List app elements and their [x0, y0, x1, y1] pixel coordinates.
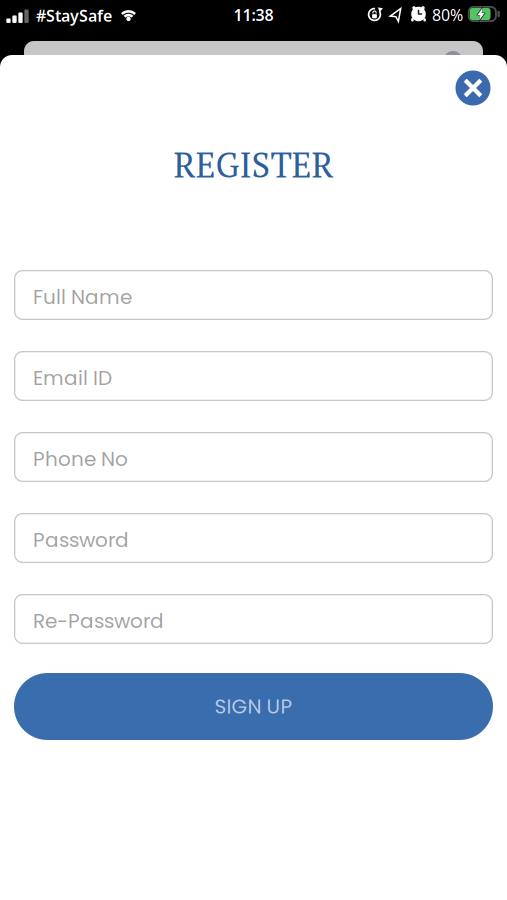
staticText: SIGN UP: [214, 692, 292, 720]
button[interactable]: Re-Password: [14, 594, 493, 644]
staticText: 80%: [432, 4, 463, 25]
staticText: Re-Password: [33, 607, 164, 635]
staticText: Phone No: [33, 445, 128, 473]
button[interactable]: Close: [455, 70, 490, 105]
button[interactable]: Phone No: [14, 432, 493, 482]
staticText: 11:38: [233, 4, 273, 25]
staticText: Password: [33, 526, 129, 554]
staticText: Email ID: [33, 364, 112, 392]
staticText: #StaySafe: [36, 5, 112, 26]
button[interactable]: Password: [14, 513, 493, 563]
button[interactable]: Full Name: [14, 270, 493, 320]
button[interactable]: SIGN UP: [14, 673, 493, 740]
button[interactable]: Email ID: [14, 351, 493, 401]
staticText: REGISTER: [173, 141, 333, 187]
staticText: Full Name: [33, 283, 132, 311]
